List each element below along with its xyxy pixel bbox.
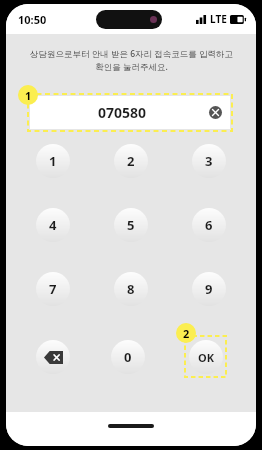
staticText: 070580 bbox=[98, 103, 147, 122]
button[interactable]: 0 bbox=[111, 340, 145, 374]
staticText: 10:50 bbox=[18, 12, 47, 27]
button[interactable]: 9 bbox=[192, 272, 226, 306]
button[interactable]: 4 bbox=[36, 208, 70, 242]
button[interactable]: Clear bbox=[209, 106, 222, 119]
staticText: 0 bbox=[124, 348, 132, 366]
staticText: 4 bbox=[49, 216, 57, 234]
staticText: 6 bbox=[205, 216, 213, 234]
button[interactable]: 3 bbox=[192, 144, 226, 178]
staticText: 2 bbox=[127, 152, 135, 170]
staticText: 3 bbox=[205, 152, 213, 170]
button[interactable]: Backspace bbox=[36, 340, 70, 374]
staticText: OK bbox=[198, 350, 215, 365]
button[interactable]: 1 bbox=[36, 144, 70, 178]
button[interactable]: OK bbox=[189, 340, 223, 374]
staticText: 2 bbox=[183, 326, 190, 341]
button[interactable]: 070580 bbox=[30, 96, 230, 129]
button[interactable]: 8 bbox=[114, 272, 148, 306]
staticText: LTE bbox=[210, 12, 227, 26]
button[interactable]: 5 bbox=[114, 208, 148, 242]
staticText: 9 bbox=[205, 280, 213, 298]
staticText: 5 bbox=[127, 216, 135, 234]
button[interactable]: 6 bbox=[192, 208, 226, 242]
staticText: 8 bbox=[127, 280, 135, 298]
staticText: 1 bbox=[25, 88, 32, 103]
button[interactable]: 2 bbox=[114, 144, 148, 178]
staticText: 상담원으로부터 안내 받은 6자리 접속코드를 입력하고 확인을 눌러주세요. bbox=[30, 48, 233, 73]
button[interactable]: 7 bbox=[36, 272, 70, 306]
staticText: 7 bbox=[49, 280, 57, 298]
staticText: 1 bbox=[49, 152, 57, 170]
